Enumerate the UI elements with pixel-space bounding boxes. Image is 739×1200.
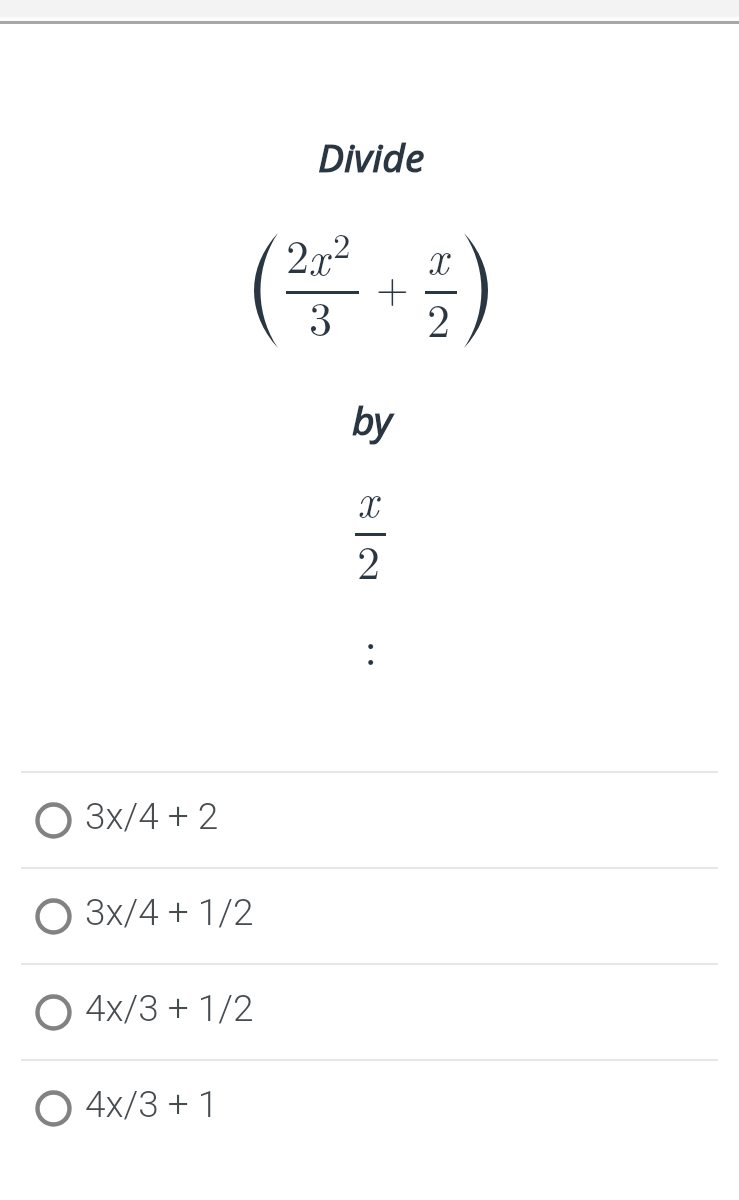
- staticText: 2: [357, 527, 380, 592]
- staticText: x: [357, 465, 379, 530]
- staticText: 2: [333, 219, 351, 269]
- button[interactable]: Select 4x/3 + 1/2: [0, 962, 739, 1058]
- staticText: 2: [286, 221, 309, 286]
- other: Select 3x/4 + 2: [35, 802, 72, 839]
- button[interactable]: Select 3x/4 + 1/2: [0, 866, 739, 962]
- staticText: Divide: [318, 130, 425, 183]
- staticText: 3x/4 + 2: [85, 795, 219, 838]
- other: Select 3x/4 + 1/2: [35, 898, 72, 935]
- staticText: 2: [427, 285, 450, 350]
- staticText: 4x/3 + 1/2: [85, 987, 254, 1030]
- staticText: +: [376, 256, 409, 316]
- staticText: 3x/4 + 1/2: [85, 891, 254, 934]
- button[interactable]: Select 4x/3 + 1: [0, 1058, 739, 1154]
- staticText: 3: [309, 283, 332, 348]
- staticText: x: [308, 223, 330, 288]
- staticText: x: [427, 222, 449, 287]
- staticText: by: [352, 393, 393, 446]
- other: Select 4x/3 + 1/2: [35, 994, 72, 1031]
- other: Select 4x/3 + 1: [35, 1090, 72, 1127]
- staticText: 4x/3 + 1: [85, 1083, 219, 1126]
- button[interactable]: Select 3x/4 + 2: [0, 770, 739, 866]
- staticText: :: [364, 611, 378, 679]
